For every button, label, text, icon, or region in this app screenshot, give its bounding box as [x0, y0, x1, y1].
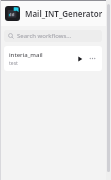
button[interactable]: Run workflow	[74, 53, 85, 64]
button[interactable]: More options	[87, 53, 98, 64]
staticText: interia_mail	[9, 51, 43, 59]
staticText: test	[9, 60, 18, 67]
staticText: Mail_INT_Generator	[25, 8, 105, 19]
button[interactable]: Search workflows...	[4, 30, 102, 42]
staticText: Search workflows...	[17, 32, 72, 40]
button[interactable]: App icon	[5, 6, 20, 21]
button[interactable]: interia_mail	[4, 46, 102, 71]
